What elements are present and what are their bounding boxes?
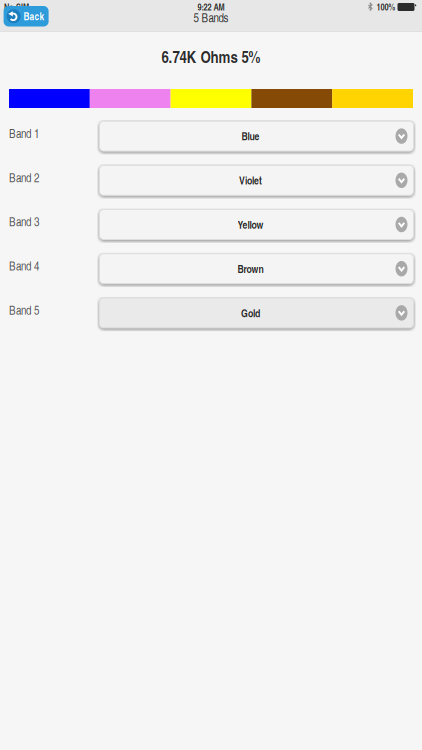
staticText: 5 Bands xyxy=(193,9,228,26)
staticText: Band 3 xyxy=(9,213,39,230)
button[interactable]: Gold xyxy=(99,298,413,328)
staticText: Band 1 xyxy=(9,125,39,141)
staticText: Band 5 xyxy=(9,302,39,318)
staticText: Violet xyxy=(239,173,262,188)
staticText: Yellow xyxy=(237,217,263,232)
staticText: 6.74K Ohms 5% xyxy=(161,45,260,68)
staticText: Blue xyxy=(241,129,259,144)
staticText: Back xyxy=(24,9,45,23)
staticText: 9:22 AM xyxy=(197,1,224,13)
staticText: Band 4 xyxy=(9,257,39,274)
staticText: Band 2 xyxy=(9,169,39,186)
button[interactable]: Brown xyxy=(99,254,413,284)
staticText: Gold xyxy=(241,305,260,320)
button[interactable]: Violet xyxy=(99,165,413,195)
staticText: 100% xyxy=(376,1,395,13)
button[interactable]: Blue xyxy=(99,121,413,151)
button[interactable]: Yellow xyxy=(99,209,413,239)
staticText: No SIM xyxy=(4,1,29,13)
staticText: Brown xyxy=(237,261,263,276)
button[interactable]: Back xyxy=(4,6,49,26)
